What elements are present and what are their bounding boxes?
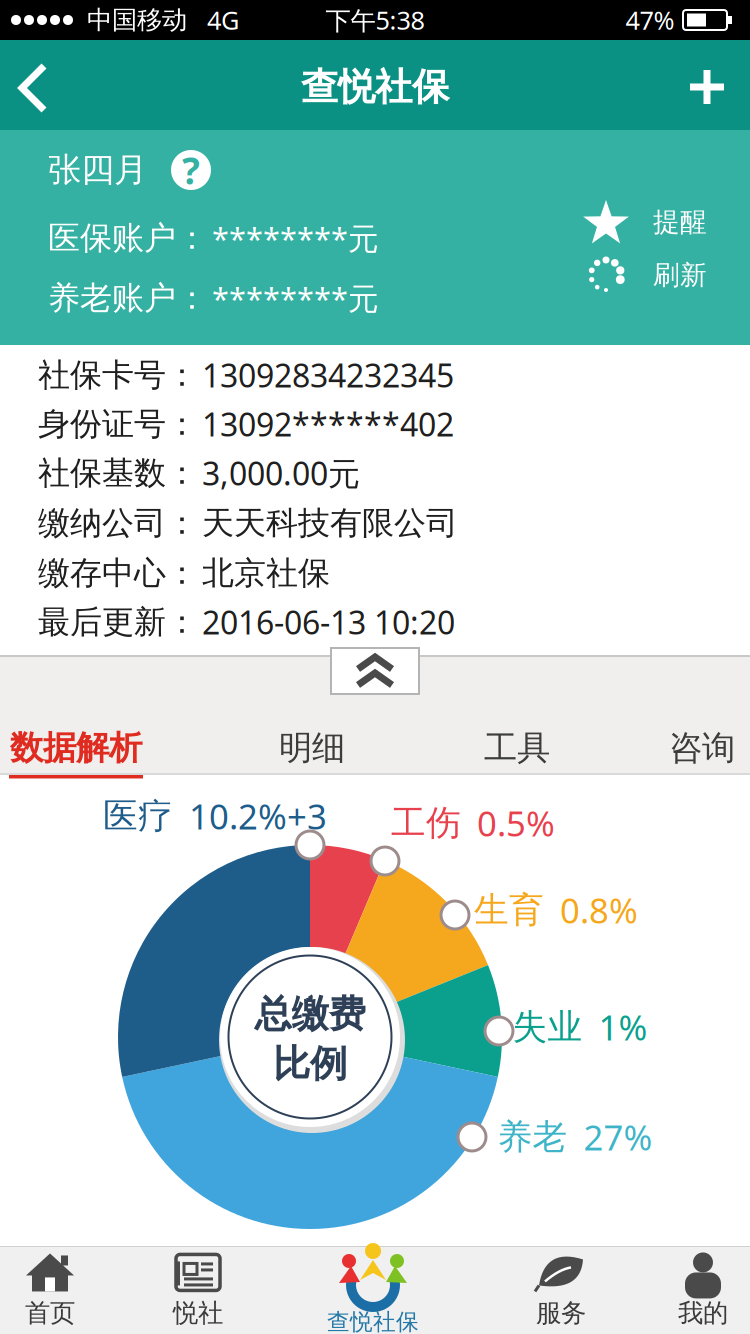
button[interactable]: 收起: [331, 648, 419, 694]
button[interactable]: 首页: [24, 1251, 76, 1328]
button[interactable]: 提醒: [583, 199, 707, 245]
staticText: 刷新: [653, 259, 707, 291]
staticText: 服务: [536, 1297, 586, 1328]
button[interactable]: 悦社: [172, 1251, 224, 1328]
staticText: 27%: [583, 1114, 652, 1160]
button[interactable]: Back: [0, 0, 750, 1334]
staticText: 总缴费: [254, 991, 365, 1037]
staticText: 明细: [279, 727, 345, 768]
staticText: 养老账户：: [48, 278, 208, 318]
staticText: 医疗: [103, 795, 173, 837]
staticText: 2016-06-13 10:20: [202, 601, 455, 643]
staticText: 数据解析: [10, 727, 142, 768]
staticText: 工具: [484, 727, 550, 768]
button[interactable]: 我的: [677, 1251, 729, 1328]
button[interactable]: 服务: [535, 1251, 587, 1328]
staticText: 天天科技有限公司: [202, 503, 458, 543]
button[interactable]: 明细: [279, 727, 345, 768]
staticText: 工伤: [391, 802, 461, 844]
button[interactable]: Add: [0, 0, 750, 1334]
staticText: 13092******402: [202, 403, 454, 445]
staticText: 悦社: [173, 1297, 223, 1328]
staticText: 0.5%: [477, 800, 555, 846]
staticText: 缴存中心：: [38, 553, 198, 593]
staticText: 缴纳公司：: [38, 503, 198, 543]
staticText: 身份证号：: [38, 404, 198, 444]
staticText: 3,000.00元: [202, 452, 360, 494]
staticText: 比例: [273, 1041, 347, 1087]
staticText: ?: [182, 145, 200, 195]
staticText: 北京社保: [202, 553, 330, 593]
button[interactable]: 咨询: [669, 727, 735, 768]
staticText: 医保账户：: [48, 218, 208, 258]
staticText: 社保基数：: [38, 453, 198, 493]
button[interactable]: Help: [171, 145, 211, 195]
staticText: 查悦社保: [301, 64, 449, 110]
staticText: 咨询: [669, 727, 735, 768]
staticText: 0.8%: [560, 887, 638, 933]
staticText: 13092834232345: [202, 354, 454, 396]
staticText: 47%: [625, 3, 674, 37]
staticText: 生育: [474, 889, 544, 931]
button[interactable]: 工具: [484, 727, 550, 768]
button[interactable]: 数据解析: [9, 727, 143, 778]
staticText: ********元: [212, 218, 379, 258]
staticText: 中国移动: [87, 4, 187, 35]
staticText: 提醒: [653, 206, 707, 238]
staticText: 失业: [512, 1006, 582, 1048]
staticText: 查悦社保: [327, 1308, 419, 1334]
staticText: 10.2%+3: [189, 793, 327, 839]
staticText: 最后更新：: [38, 602, 198, 642]
staticText: 下午5:38: [325, 3, 424, 37]
staticText: ********元: [212, 278, 379, 318]
staticText: 养老: [497, 1116, 567, 1158]
staticText: 首页: [25, 1297, 75, 1328]
staticText: 我的: [678, 1297, 728, 1328]
button[interactable]: 查悦社保: [0, 0, 750, 1334]
staticText: 社保卡号：: [38, 355, 198, 395]
button[interactable]: 刷新: [583, 252, 707, 298]
staticText: 张四月: [48, 149, 147, 190]
staticText: 4G: [207, 3, 239, 37]
staticText: 1%: [598, 1004, 647, 1050]
